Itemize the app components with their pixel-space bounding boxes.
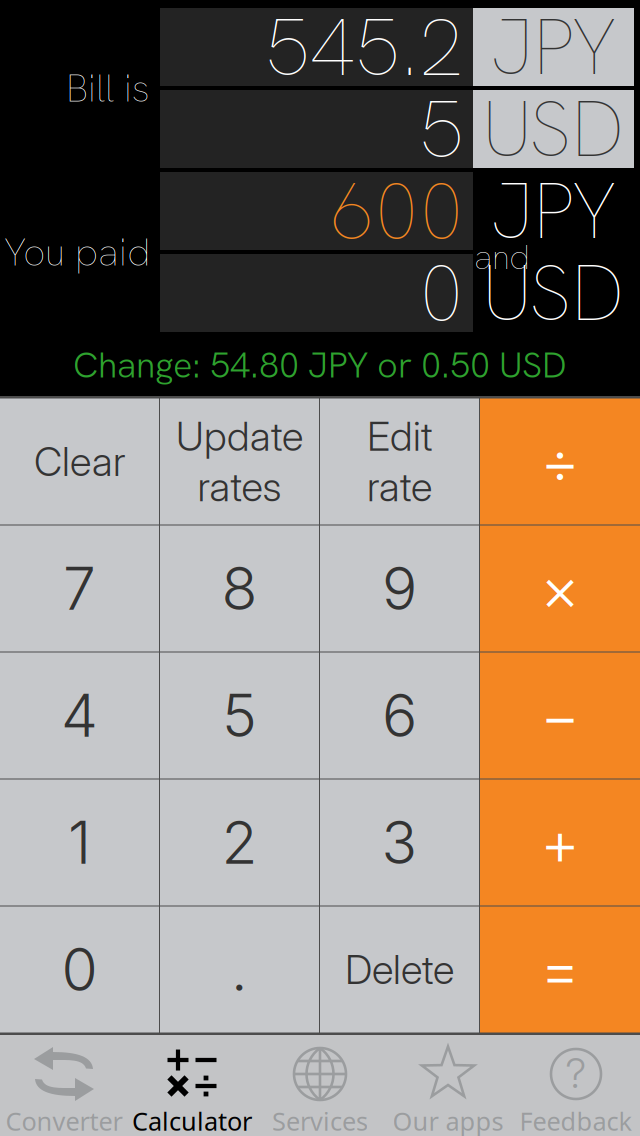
button[interactable]: 8 <box>160 525 319 651</box>
staticText: − <box>540 678 580 753</box>
staticText: 5 <box>222 680 257 751</box>
button[interactable]: 6 <box>320 652 479 778</box>
staticText: rate <box>367 462 432 511</box>
staticText: Converter <box>5 1104 122 1136</box>
button[interactable]: . <box>160 906 319 1032</box>
button[interactable]: − <box>480 652 640 778</box>
staticText: 545.2 <box>265 0 464 99</box>
staticText: Calculator <box>132 1104 252 1136</box>
staticText: × <box>540 551 580 626</box>
staticText: + <box>540 805 580 880</box>
staticText: ÷ <box>540 424 580 499</box>
staticText: 0 <box>61 934 97 1005</box>
button[interactable]: 1 <box>0 779 159 905</box>
button[interactable]: 7 <box>0 525 159 651</box>
staticText: 8 <box>221 553 257 624</box>
button[interactable]: USD <box>473 254 634 332</box>
staticText: 5 <box>419 77 464 181</box>
staticText: 1 <box>68 807 91 878</box>
staticText: = <box>540 932 580 1007</box>
staticText: JPY <box>491 0 616 97</box>
button[interactable]: 9 <box>320 525 479 651</box>
staticText: Delete <box>345 945 454 994</box>
staticText: 7 <box>63 553 96 624</box>
staticText: 6 <box>382 680 417 751</box>
staticText: Edit <box>367 412 432 460</box>
staticText: USD <box>482 243 625 343</box>
button[interactable]: + <box>480 779 640 905</box>
staticText: 2 <box>221 807 257 878</box>
button[interactable]: JPY <box>473 172 634 250</box>
staticText: 3 <box>381 807 417 878</box>
staticText: rates <box>197 462 281 511</box>
staticText: Feedback <box>519 1104 632 1136</box>
staticText: and <box>474 234 530 280</box>
staticText: Change: 54.80 JPY or 0.50 USD <box>73 341 567 388</box>
staticText: USD <box>482 79 625 179</box>
staticText: JPY <box>491 161 616 261</box>
button[interactable]: = <box>480 906 640 1032</box>
staticText: Update <box>176 412 303 460</box>
button[interactable]: Clear <box>0 398 159 524</box>
staticText: 600 <box>329 159 464 263</box>
button[interactable]: Converter <box>0 1035 128 1136</box>
staticText: 0 <box>419 241 464 345</box>
button[interactable]: 4 <box>0 652 159 778</box>
button[interactable]: Update <box>160 398 319 524</box>
button[interactable]: Our apps <box>384 1035 512 1136</box>
button[interactable]: 3 <box>320 779 479 905</box>
button[interactable]: 5 <box>160 652 319 778</box>
button[interactable]: Edit <box>320 398 479 524</box>
staticText: Services <box>272 1104 368 1136</box>
button[interactable]: Delete <box>320 906 479 1032</box>
button[interactable]: ÷ <box>480 398 640 524</box>
staticText: Bill is <box>66 63 150 113</box>
staticText: ? <box>565 1048 586 1098</box>
button[interactable]: USD <box>473 90 634 168</box>
button[interactable]: 2 <box>160 779 319 905</box>
button[interactable]: ? <box>512 1035 640 1136</box>
button[interactable]: Calculator <box>128 1035 256 1136</box>
staticText: You paid <box>4 227 150 277</box>
button[interactable]: JPY <box>473 8 634 86</box>
staticText: Our apps <box>392 1104 503 1136</box>
staticText: 9 <box>382 553 417 624</box>
staticText: Clear <box>34 437 125 486</box>
button[interactable]: 0 <box>0 906 159 1032</box>
button[interactable]: Services <box>256 1035 384 1136</box>
button[interactable]: × <box>480 525 640 651</box>
staticText: . <box>231 934 248 1005</box>
staticText: 4 <box>61 680 98 751</box>
